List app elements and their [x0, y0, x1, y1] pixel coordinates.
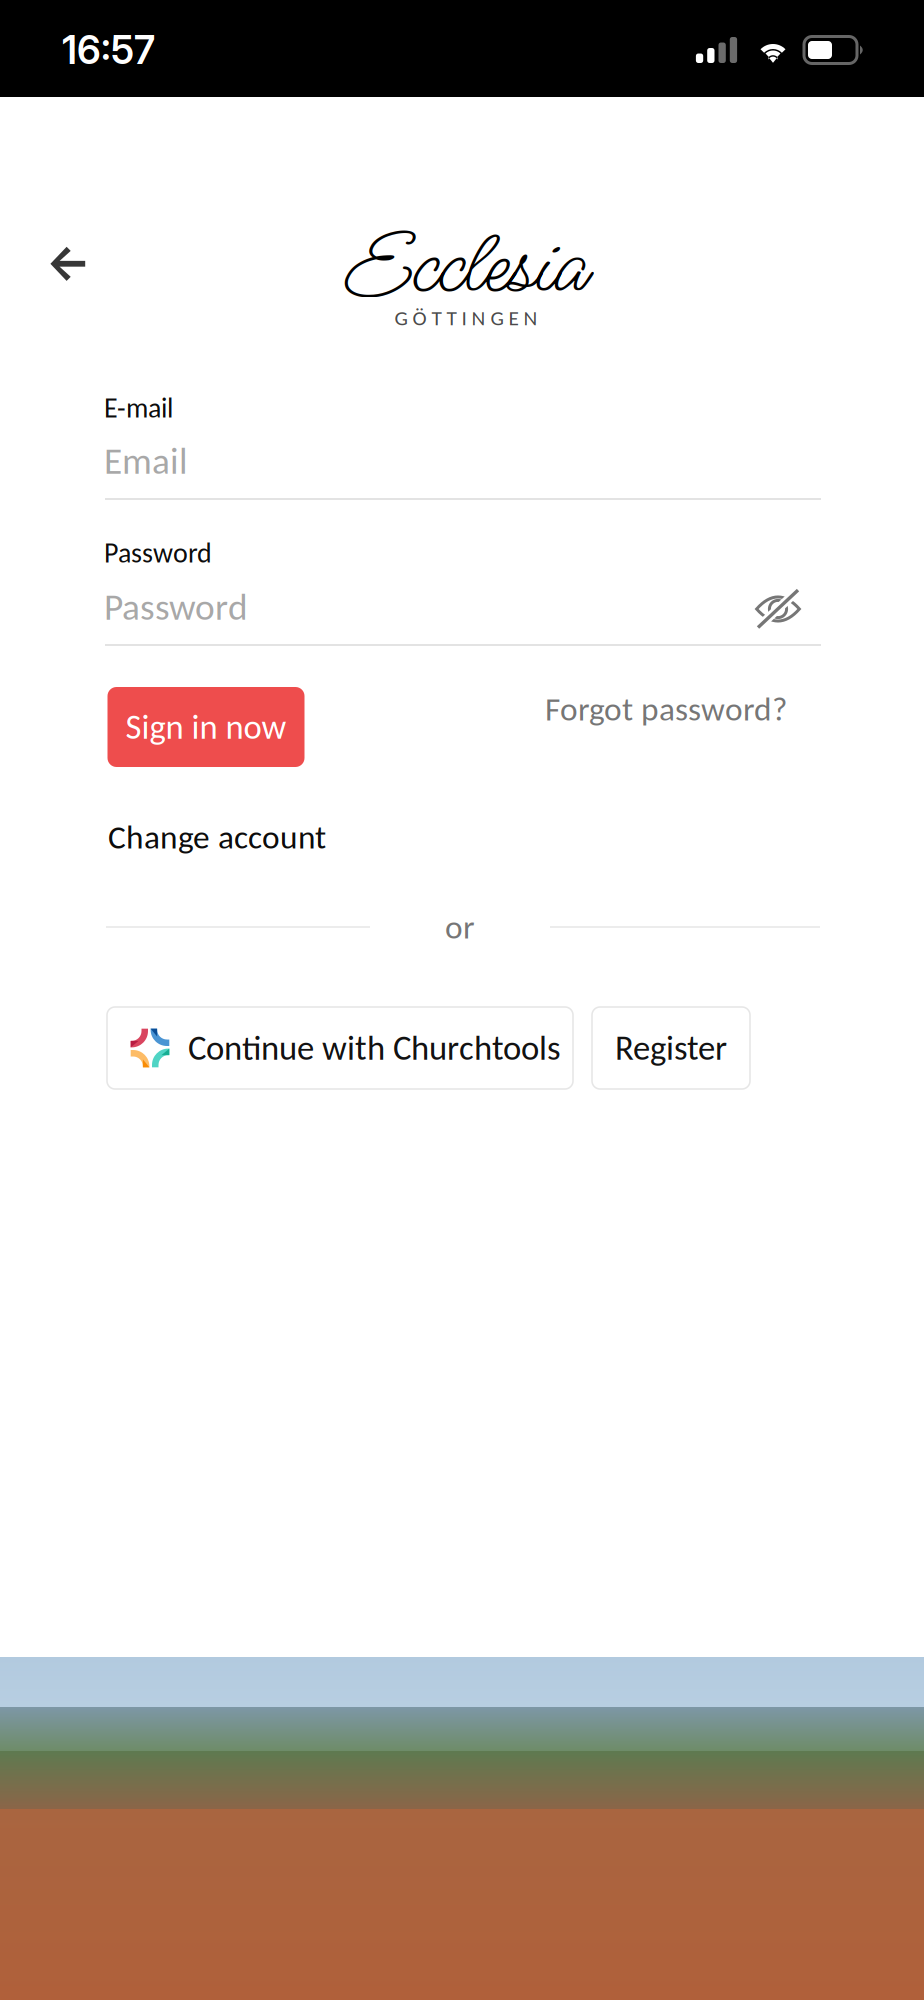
- staticText: G Ö T T I N G E N: [394, 305, 537, 331]
- staticText: Email: [104, 438, 188, 484]
- staticText: Sign in now: [125, 706, 286, 748]
- staticText: E-mail: [104, 391, 173, 425]
- staticText: Password: [104, 584, 248, 630]
- button[interactable]: Sign in now: [107, 687, 304, 767]
- staticText: Password: [104, 536, 212, 570]
- staticText: Forgot password?: [545, 689, 787, 729]
- staticText: Continue with Churchtools: [188, 1027, 561, 1069]
- staticText: or: [445, 907, 475, 947]
- button[interactable]: Continue with Churchtools: [107, 1007, 573, 1089]
- button[interactable]: Show password: [746, 580, 810, 638]
- staticText: Register: [615, 1027, 727, 1069]
- staticText: 16:57: [62, 27, 155, 73]
- button[interactable]: Register: [592, 1007, 750, 1089]
- button[interactable]: Forgot password?: [526, 680, 806, 738]
- staticText: Change account: [108, 817, 326, 857]
- button[interactable]: Change account: [108, 811, 348, 863]
- staticText: Ecclesia: [344, 206, 588, 330]
- button[interactable]: Back: [23, 219, 113, 309]
